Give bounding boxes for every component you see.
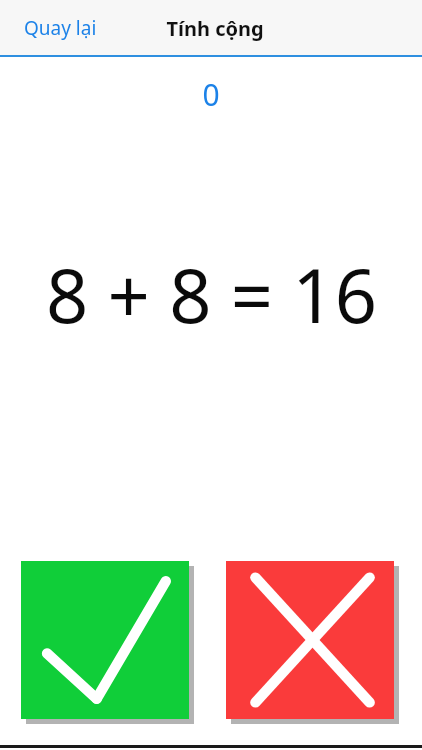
button[interactable]: Wrong bbox=[226, 561, 399, 724]
staticText: Quay lại bbox=[24, 15, 97, 41]
staticText: Tính cộng bbox=[166, 15, 264, 42]
button[interactable]: Correct bbox=[21, 561, 194, 724]
staticText: 8 + 8 = 16 bbox=[46, 244, 377, 336]
staticText: 0 bbox=[202, 74, 220, 115]
button[interactable]: Quay lại bbox=[14, 11, 124, 45]
